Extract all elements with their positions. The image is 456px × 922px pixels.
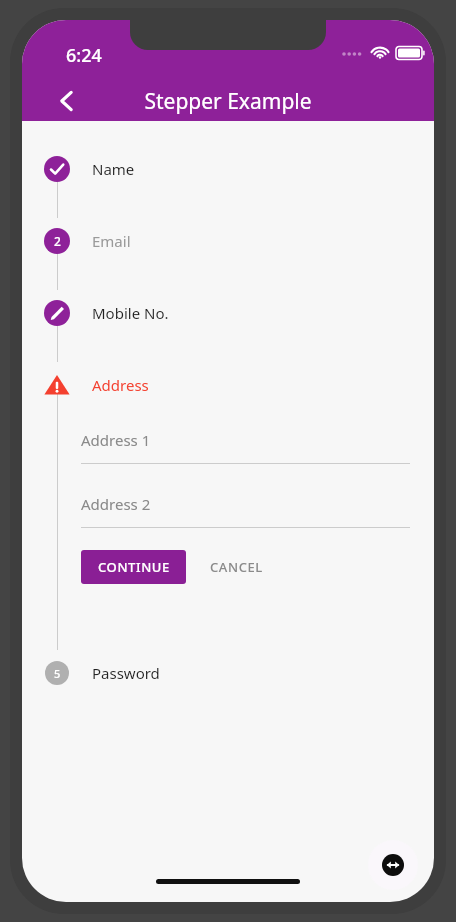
staticText: Stepper Example	[144, 87, 312, 116]
staticText: Mobile No.	[92, 303, 169, 323]
staticText: CANCEL	[210, 558, 263, 576]
staticText: CONTINUE	[98, 558, 170, 576]
staticText: Address 2	[81, 494, 151, 514]
button[interactable]: Toggle direction	[368, 840, 418, 890]
staticText: Name	[92, 159, 135, 179]
button[interactable]: CANCEL	[196, 550, 277, 584]
staticText: Address 1	[81, 430, 151, 450]
staticText: Password	[92, 663, 160, 683]
staticText: 5	[54, 666, 61, 681]
button[interactable]: 2	[22, 219, 434, 263]
staticText: 6:24	[66, 43, 102, 68]
button[interactable]: Address 2	[81, 494, 410, 528]
button[interactable]: CONTINUE	[81, 550, 186, 584]
button[interactable]: Address	[22, 363, 434, 407]
staticText: 2	[54, 233, 61, 249]
staticText: Address	[92, 375, 149, 395]
button[interactable]: Back	[44, 78, 90, 124]
button[interactable]: 5	[22, 651, 434, 695]
button[interactable]: Address 1	[81, 430, 410, 464]
button[interactable]: Mobile No.	[22, 291, 434, 335]
staticText: Email	[92, 231, 131, 251]
button[interactable]: Name	[22, 147, 434, 191]
